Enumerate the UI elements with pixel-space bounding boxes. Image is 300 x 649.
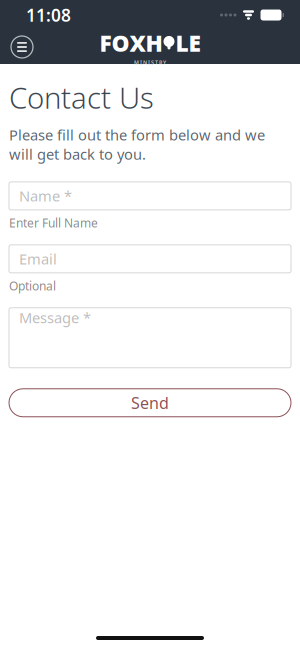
button[interactable]: Menu [9,34,35,60]
button[interactable]: Email [9,245,291,273]
staticText: Optional [9,278,56,294]
staticText: FOXH [99,28,162,58]
staticText: Please fill out the form below and we wi… [9,125,265,164]
staticText: Email [19,249,57,269]
staticText: Send [131,392,169,413]
button[interactable]: Name * [9,182,291,210]
staticText: Contact Us [9,78,154,117]
staticText: 11:08 [26,3,71,26]
staticText: Message * [19,308,91,327]
button[interactable]: Message * [9,308,291,368]
staticText: M I N I S T R Y [134,59,166,66]
button[interactable]: Send [9,389,291,417]
staticText: Name * [19,186,72,206]
staticText: LE [175,28,200,58]
staticText: Enter Full Name [9,215,98,231]
